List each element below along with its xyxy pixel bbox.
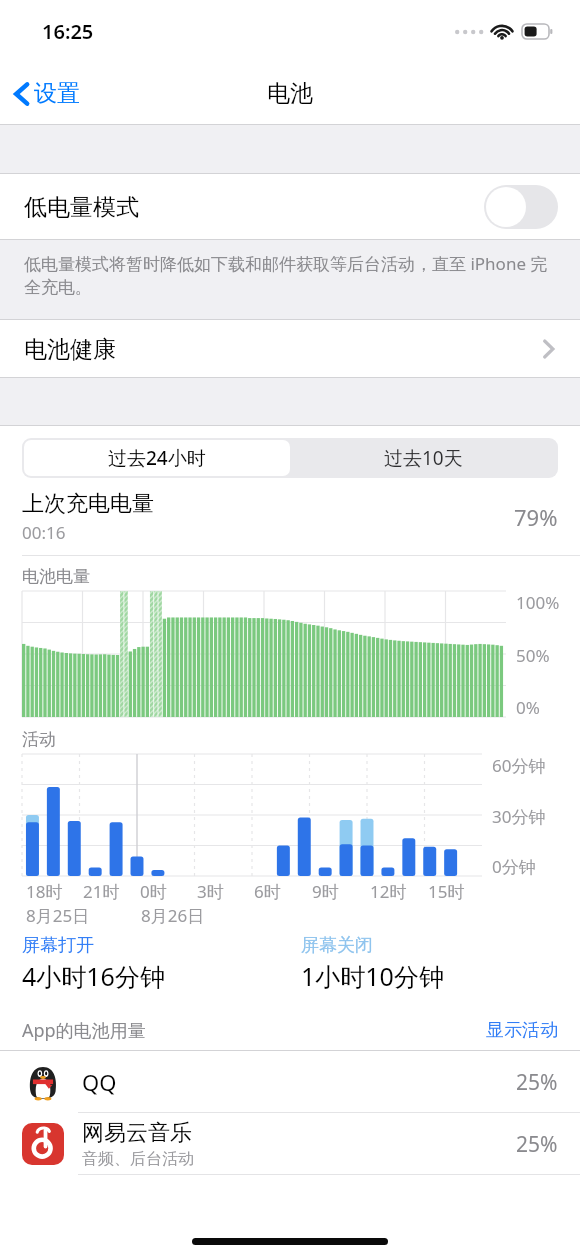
staticText: 0分钟 [492,855,536,878]
staticText: 显示活动 [486,1019,558,1042]
staticText: 0% [516,696,540,719]
staticText: 6时 [254,880,281,903]
staticText: 音频、后台活动 [82,1149,194,1169]
staticText: 21时 [83,880,120,903]
staticText: 电池 [267,79,313,108]
staticText: 电池健康 [24,335,116,364]
staticText: 18时 [26,880,63,903]
staticText: 25% [516,1068,558,1097]
button[interactable]: 电池健康 [0,320,580,378]
staticText: 100% [516,591,560,614]
staticText: 过去24小时 [108,445,206,471]
staticText: 活动 [22,729,56,750]
button[interactable]: 低电量模式 [0,174,580,240]
button[interactable]: 网易云音乐 [0,1113,580,1175]
button[interactable]: 过去10天 [290,440,556,476]
button[interactable]: 显示活动 [486,1019,580,1042]
button[interactable]: 过去24小时 [24,440,290,476]
staticText: 12时 [370,880,407,903]
staticText: 屏幕打开 [22,934,94,957]
staticText: 0时 [140,880,167,903]
staticText: 4小时16分钟 [22,959,165,993]
staticText: App的电池用量 [22,1018,146,1043]
staticText: 16:25 [42,18,94,45]
staticText: 3时 [197,880,224,903]
staticText: 8月26日 [141,904,205,927]
staticText: 8月25日 [26,904,90,927]
button[interactable]: 低电量模式开关 [484,185,558,229]
staticText: QQ [82,1067,117,1097]
button[interactable]: 设置 [0,73,92,114]
staticText: 上次充电电量 [22,490,154,518]
staticText: 电池电量 [22,566,90,587]
staticText: 00:16 [22,521,66,544]
button[interactable]: QQ [0,1051,580,1113]
staticText: 60分钟 [492,754,546,777]
staticText: 1小时10分钟 [301,959,444,993]
staticText: 9时 [312,880,339,903]
staticText: 15时 [428,880,465,903]
staticText: 25% [516,1130,558,1159]
staticText: 低电量模式将暂时降低如下载和邮件获取等后台活动，直至 iPhone 完全充电。 [24,252,558,298]
staticText: 50% [516,644,550,667]
staticText: 79% [514,502,558,532]
staticText: 网易云音乐 [82,1119,192,1147]
staticText: 30分钟 [492,805,546,828]
staticText: 低电量模式 [24,193,139,222]
staticText: 设置 [34,79,80,108]
staticText: 屏幕关闭 [301,934,373,957]
staticText: 过去10天 [384,445,463,471]
